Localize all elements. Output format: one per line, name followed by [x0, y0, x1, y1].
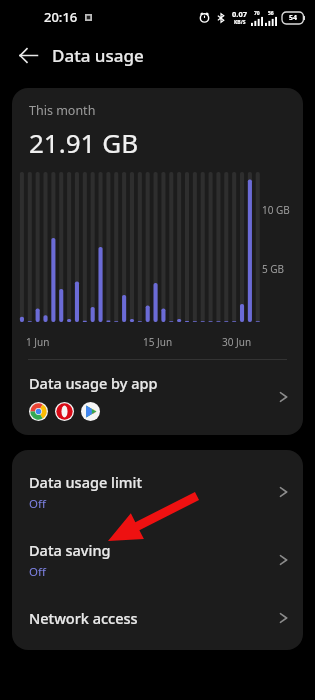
staticText: 15 Jun: [143, 335, 173, 349]
button[interactable]: Network access: [12, 594, 303, 642]
button[interactable]: Back: [8, 35, 48, 75]
staticText: 21.91 GB: [29, 125, 139, 160]
staticText: 10 GB: [262, 203, 290, 217]
staticText: 56: [268, 10, 274, 17]
staticText: 1 Jun: [26, 335, 50, 349]
staticText: This month: [29, 102, 96, 119]
staticText: Data usage: [52, 44, 144, 67]
staticText: 20:16: [44, 8, 78, 26]
staticText: Data saving: [29, 540, 111, 560]
staticText: Off: [29, 564, 46, 580]
button[interactable]: Data usage by app: [12, 360, 303, 435]
staticText: 70: [254, 10, 260, 17]
staticText: 54: [289, 13, 298, 23]
staticText: Data usage by app: [29, 373, 158, 393]
button[interactable]: Data usage limit: [12, 458, 303, 526]
button[interactable]: Data saving: [12, 526, 303, 594]
staticText: Data usage limit: [29, 472, 143, 492]
staticText: Off: [29, 496, 46, 512]
staticText: 5 GB: [262, 262, 285, 276]
staticText: Network access: [29, 608, 138, 628]
staticText: 30 Jun: [222, 335, 252, 349]
staticText: KB/S: [234, 19, 246, 26]
staticText: 0.07: [232, 9, 247, 19]
